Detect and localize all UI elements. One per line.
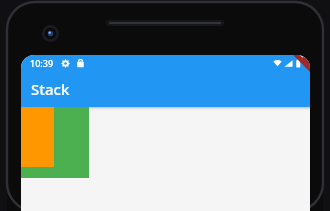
button[interactable]: Stack	[21, 71, 310, 107]
button[interactable]	[21, 107, 89, 178]
staticText: Stack	[31, 79, 70, 99]
staticText: 10:39	[30, 57, 54, 69]
staticText: DEBUG	[284, 55, 309, 61]
other: Debug banner	[21, 55, 310, 211]
